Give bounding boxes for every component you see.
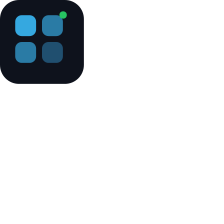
button[interactable]: Open app — [0, 0, 84, 84]
